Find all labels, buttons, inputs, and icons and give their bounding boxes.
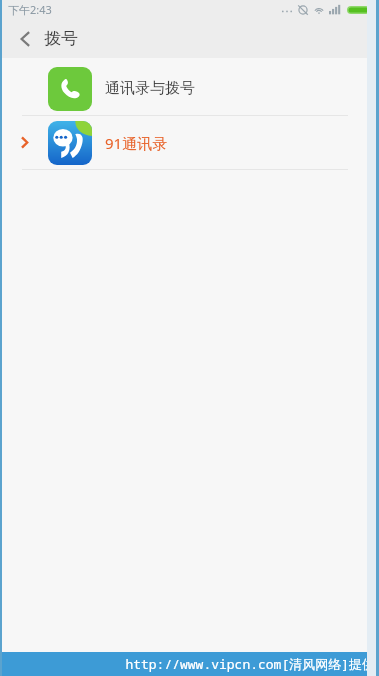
staticText: 拨号: [44, 28, 78, 49]
button[interactable]: 91通讯录: [0, 116, 379, 169]
button[interactable]: 通讯录与拨号: [0, 62, 379, 115]
staticText: http://www.vipcn.com[清风网络]提供: [125, 655, 375, 673]
staticText: 通讯录与拨号: [105, 79, 195, 98]
staticText: 91通讯录: [105, 133, 168, 153]
button[interactable]: Back: [10, 24, 40, 54]
staticText: 下午2:43: [8, 2, 52, 17]
